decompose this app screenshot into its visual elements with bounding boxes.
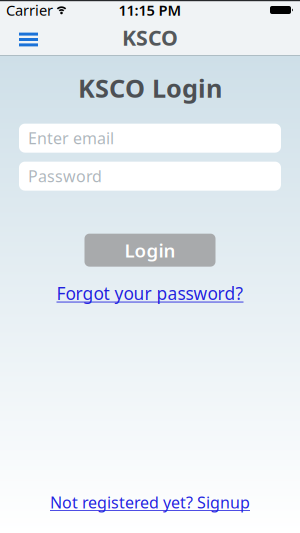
staticText: 11:15 PM xyxy=(118,0,181,20)
staticText: Password xyxy=(28,165,102,187)
staticText: Not registered yet? Signup xyxy=(50,492,250,513)
staticText: Carrier xyxy=(6,0,53,20)
staticText: KSCO Login xyxy=(78,71,222,105)
button[interactable] xyxy=(0,29,38,46)
button[interactable]: Login xyxy=(84,234,215,267)
button[interactable]: Enter email xyxy=(19,124,281,153)
staticText: KSCO xyxy=(122,23,178,52)
button[interactable]: Not registered yet? Signup xyxy=(50,492,250,513)
staticText: Login xyxy=(124,238,175,262)
button[interactable]: Password xyxy=(19,162,281,191)
staticText: Enter email xyxy=(28,127,114,149)
button[interactable]: Forgot your password? xyxy=(56,282,243,305)
staticText: Forgot your password? xyxy=(56,282,243,305)
